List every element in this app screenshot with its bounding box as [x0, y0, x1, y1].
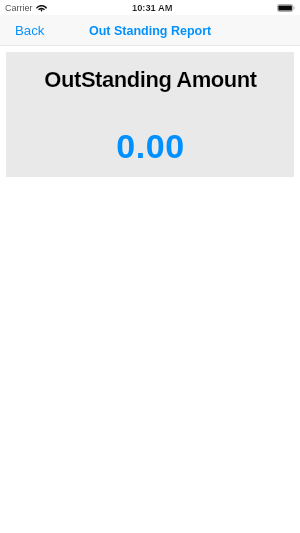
staticText: 10:31 AM	[132, 3, 173, 13]
staticText: Back	[15, 23, 45, 38]
staticText: 0.00	[116, 127, 185, 165]
staticText: OutStanding Amount	[44, 67, 257, 92]
button[interactable]: Back	[0, 15, 55, 46]
staticText: Carrier	[5, 3, 33, 13]
staticText: Out Standing Report	[89, 24, 212, 38]
